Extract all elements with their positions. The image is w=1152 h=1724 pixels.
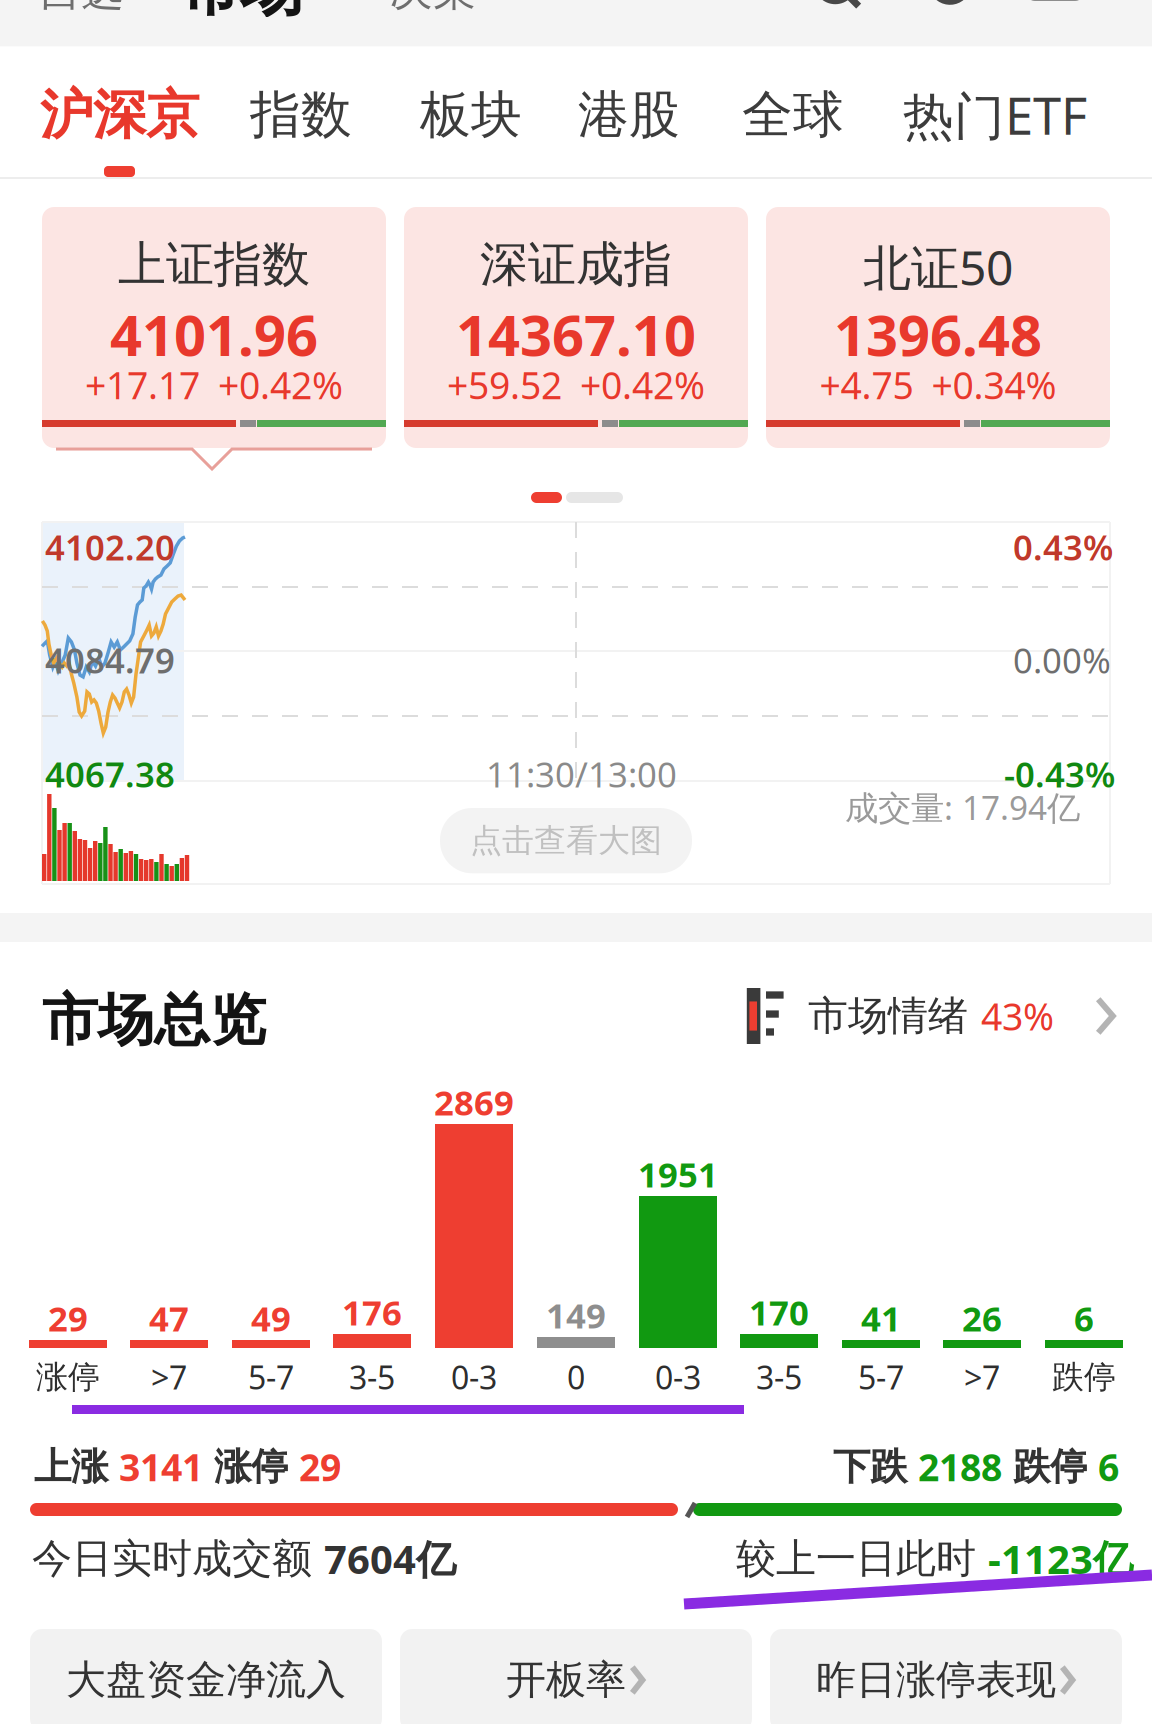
staticText: +4.75 (819, 360, 913, 410)
staticText: 2188 (918, 1442, 1002, 1492)
button[interactable]: 大盘资金净流入 (30, 1629, 382, 1724)
staticText: 43% (981, 991, 1054, 1041)
button[interactable]: 点击查看大图 (440, 808, 692, 873)
staticText: >7 (964, 1356, 1000, 1398)
staticText: 北证50 (863, 235, 1013, 299)
staticText: 决策 (390, 0, 476, 17)
staticText: 3141 (119, 1442, 203, 1492)
staticText: 全球 (742, 84, 844, 146)
button[interactable]: 决策 (390, 0, 476, 17)
staticText: 41 (861, 1295, 901, 1341)
staticText: 大盘资金净流入 (66, 1655, 346, 1704)
staticText: 跌停 (1052, 1357, 1116, 1397)
staticText: 47 (149, 1295, 189, 1341)
staticText: 26 (962, 1295, 1002, 1341)
staticText: 市场情绪 (808, 991, 968, 1040)
staticText: 29 (48, 1295, 88, 1341)
staticText: 市场总览 (42, 986, 266, 1055)
staticText: +17.17 (85, 360, 200, 410)
staticText: +0.34% (931, 360, 1056, 410)
button[interactable]: 港股 (578, 77, 680, 153)
staticText: +0.42% (580, 360, 705, 410)
staticText: 上证指数 (118, 235, 310, 294)
staticText: 4084.79 (45, 637, 175, 683)
staticText: 1951 (638, 1151, 718, 1197)
button[interactable]: 市场 (180, 0, 302, 26)
button[interactable]: 深证成指 (404, 207, 748, 448)
staticText: 板块 (420, 84, 522, 146)
staticText: 176 (342, 1289, 402, 1335)
staticText: 自选 (38, 0, 124, 17)
staticText: 上涨 (34, 1444, 119, 1490)
staticText: 7604亿 (324, 1532, 456, 1585)
button[interactable]: 热门ETF (903, 77, 1087, 153)
button[interactable]: 开板率 (400, 1629, 752, 1724)
staticText: 3-5 (349, 1356, 395, 1398)
staticText: 4102.20 (45, 524, 175, 570)
button[interactable]: 搜索 (808, 0, 870, 16)
staticText: 市场 (180, 0, 302, 26)
staticText: 跌停 (1002, 1444, 1098, 1490)
button[interactable]: 市场情绪 (746, 988, 1118, 1044)
staticText: 5-7 (858, 1356, 904, 1398)
button[interactable]: 上证指数 (42, 207, 386, 448)
button[interactable]: 北证50 (766, 207, 1110, 448)
staticText: 热门ETF (903, 81, 1087, 149)
staticText: 今日实时成交额 (32, 1534, 324, 1583)
staticText: -1123亿 (988, 1532, 1133, 1585)
staticText: 涨停 (203, 1444, 299, 1490)
staticText: 4101.96 (110, 297, 318, 371)
staticText: 深证成指 (480, 235, 672, 294)
staticText: 涨停 (36, 1357, 100, 1397)
staticText: +59.52 (447, 360, 562, 410)
staticText: >7 (151, 1356, 187, 1398)
staticText: 0 (567, 1356, 585, 1398)
staticText: 149 (546, 1292, 606, 1338)
staticText: 49 (251, 1295, 291, 1341)
button[interactable]: 昨日涨停表现 (770, 1629, 1122, 1724)
staticText: 170 (749, 1289, 809, 1335)
button[interactable]: 板块 (420, 77, 522, 153)
button[interactable]: 更多 (1022, 0, 1088, 16)
staticText: 4067.38 (45, 751, 175, 797)
staticText: 港股 (578, 84, 680, 146)
button[interactable]: 刷新 (920, 0, 980, 16)
button[interactable]: 全球 (742, 77, 844, 153)
staticText: 下跌 (833, 1444, 918, 1490)
button[interactable]: 自选 (38, 0, 124, 17)
button[interactable]: 沪深京 (40, 77, 199, 153)
staticText: 点击查看大图 (470, 821, 662, 860)
staticText: 沪深京 (40, 82, 199, 148)
staticText: +0.42% (218, 360, 343, 410)
staticText: 6 (1098, 1442, 1119, 1492)
staticText: 较上一日此时 (736, 1534, 988, 1583)
button[interactable]: 指数 (250, 77, 352, 153)
staticText: 1396.48 (834, 297, 1042, 371)
staticText: 2869 (434, 1079, 514, 1125)
staticText: 指数 (250, 84, 352, 146)
staticText: 昨日涨停表现 (816, 1655, 1056, 1704)
staticText: 11:30/13:00 (486, 751, 677, 797)
staticText: 0-3 (451, 1356, 497, 1398)
staticText: 14367.10 (456, 297, 696, 371)
staticText: 5-7 (248, 1356, 294, 1398)
staticText: 3-5 (756, 1356, 802, 1398)
staticText: 0-3 (655, 1356, 701, 1398)
staticText: -0.43% (1004, 751, 1115, 797)
staticText: 6 (1074, 1295, 1094, 1341)
staticText: 成交量: 17.94亿 (845, 785, 1080, 829)
staticText: 29 (299, 1442, 341, 1492)
staticText: 0.00% (1013, 637, 1111, 683)
staticText: 开板率 (506, 1655, 626, 1704)
staticText: 0.43% (1013, 524, 1113, 570)
